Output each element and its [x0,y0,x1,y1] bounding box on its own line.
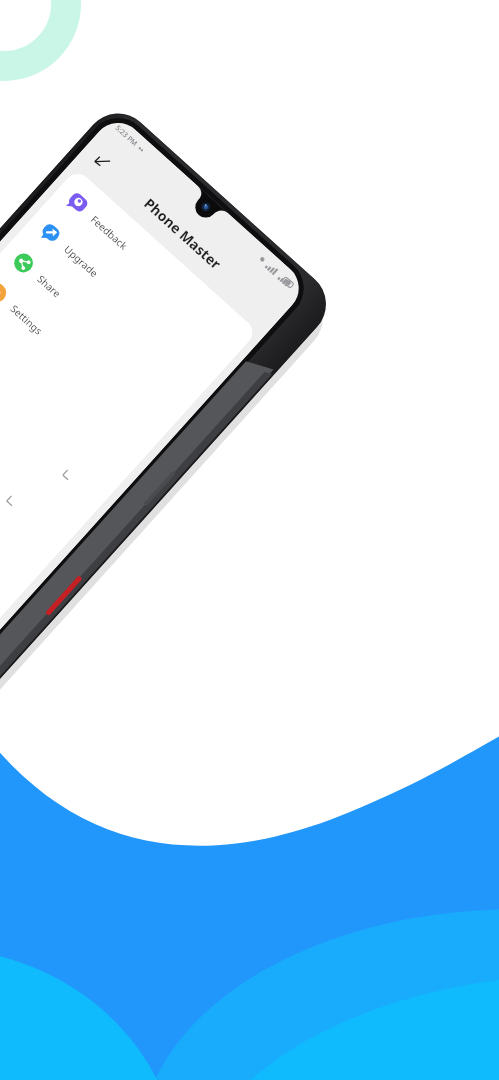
staticText: 5:23 PM [113,123,140,149]
staticText: Feedback [88,212,131,253]
button[interactable]: Feedback [46,173,254,366]
staticText: Phone Master [140,194,225,273]
button[interactable]: Back [83,141,122,180]
staticText: Upgrade [61,242,101,280]
button[interactable]: Settings [0,262,174,455]
staticText: Share [34,272,64,300]
button[interactable]: Share [0,232,200,425]
button[interactable]: Upgrade [19,202,227,395]
staticText: Settings [8,302,46,338]
